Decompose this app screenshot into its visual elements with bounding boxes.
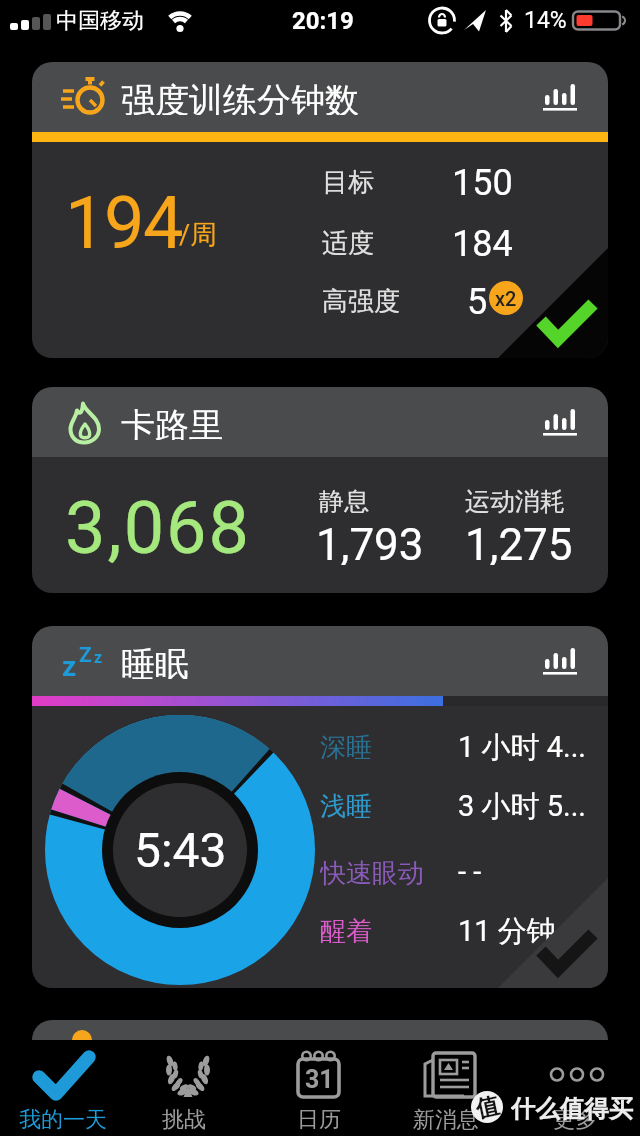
staticText: 184 (452, 223, 513, 261)
staticText: 值 (473, 1091, 502, 1123)
staticText: 强度训练分钟数 (121, 79, 359, 115)
staticText: 1 小时 4... (458, 729, 586, 763)
staticText: 醒着 (320, 915, 372, 945)
button[interactable] (0, 1042, 128, 1136)
staticText: 新消息 (413, 1106, 479, 1132)
staticText: x2 (495, 287, 517, 310)
staticText: /周 (179, 218, 218, 252)
staticText: 更多 (553, 1106, 597, 1132)
staticText: 150 (452, 162, 513, 200)
staticText: 什么值得买 (511, 1094, 634, 1122)
staticText: 适度 (322, 227, 374, 257)
staticText: 浅睡 (320, 790, 372, 820)
staticText: 5:43 (134, 822, 227, 878)
staticText: 目标 (322, 166, 374, 196)
button[interactable] (384, 1042, 512, 1136)
staticText: z (94, 648, 103, 666)
button[interactable] (543, 647, 579, 675)
staticText: 日历 (297, 1106, 341, 1132)
button[interactable]: 强度训练分钟数 (32, 62, 608, 358)
staticText: 深睡 (320, 731, 372, 761)
staticText: 194 (65, 181, 182, 261)
staticText: - - (458, 855, 482, 889)
button[interactable] (543, 408, 579, 436)
staticText: 快速眼动 (320, 857, 424, 887)
staticText: 5 (467, 281, 488, 319)
staticText: 卡路里 (121, 404, 223, 440)
staticText: 高强度 (322, 285, 400, 315)
staticText: 我的一天 (19, 1106, 107, 1132)
button[interactable] (512, 1042, 640, 1136)
button[interactable]: z (32, 626, 608, 988)
staticText: 1,793 (316, 519, 424, 565)
staticText: 11 分钟 (458, 913, 556, 947)
staticText: 14% (524, 7, 567, 33)
staticText: 3,068 (65, 486, 252, 566)
staticText: Z (79, 643, 92, 667)
button[interactable] (543, 83, 579, 111)
staticText: 3 小时 5... (458, 788, 586, 822)
button[interactable] (256, 1042, 384, 1136)
staticText: 挑战 (162, 1106, 206, 1132)
staticText: 运动消耗 (465, 486, 565, 514)
staticText: 静息 (319, 486, 369, 514)
staticText: 1,275 (465, 519, 573, 565)
button[interactable]: 卡路里 (32, 387, 608, 593)
staticText: 睡眠 (121, 643, 189, 679)
staticText: 中国移动 (56, 7, 144, 33)
staticText: 31 (305, 1065, 334, 1094)
staticText: z (62, 650, 77, 680)
button[interactable] (128, 1042, 256, 1136)
staticText: 20:19 (292, 7, 354, 33)
